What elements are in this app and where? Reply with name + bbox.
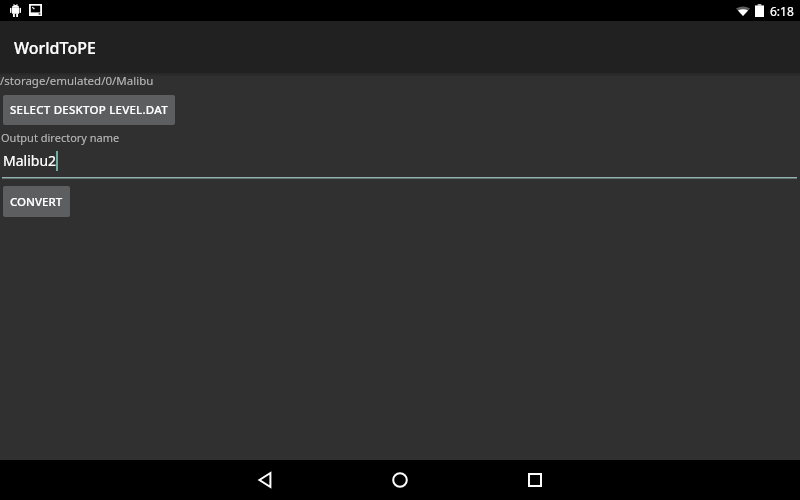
staticText: /storage/emulated/0/Malibu xyxy=(0,73,154,89)
staticText: Malibu2 xyxy=(3,151,57,170)
button[interactable]: Back xyxy=(235,460,295,500)
staticText: CONVERT xyxy=(10,194,63,210)
staticText: SELECT DESKTOP LEVEL.DAT xyxy=(10,102,168,118)
button[interactable]: Home xyxy=(370,460,430,500)
staticText: WorldToPE xyxy=(14,37,96,59)
button[interactable]: Recent apps xyxy=(505,460,565,500)
staticText: 6:18 xyxy=(770,3,794,19)
button[interactable]: CONVERT xyxy=(3,186,70,217)
button[interactable]: SELECT DESKTOP LEVEL.DAT xyxy=(3,95,175,125)
staticText: Output directory name xyxy=(1,130,120,145)
